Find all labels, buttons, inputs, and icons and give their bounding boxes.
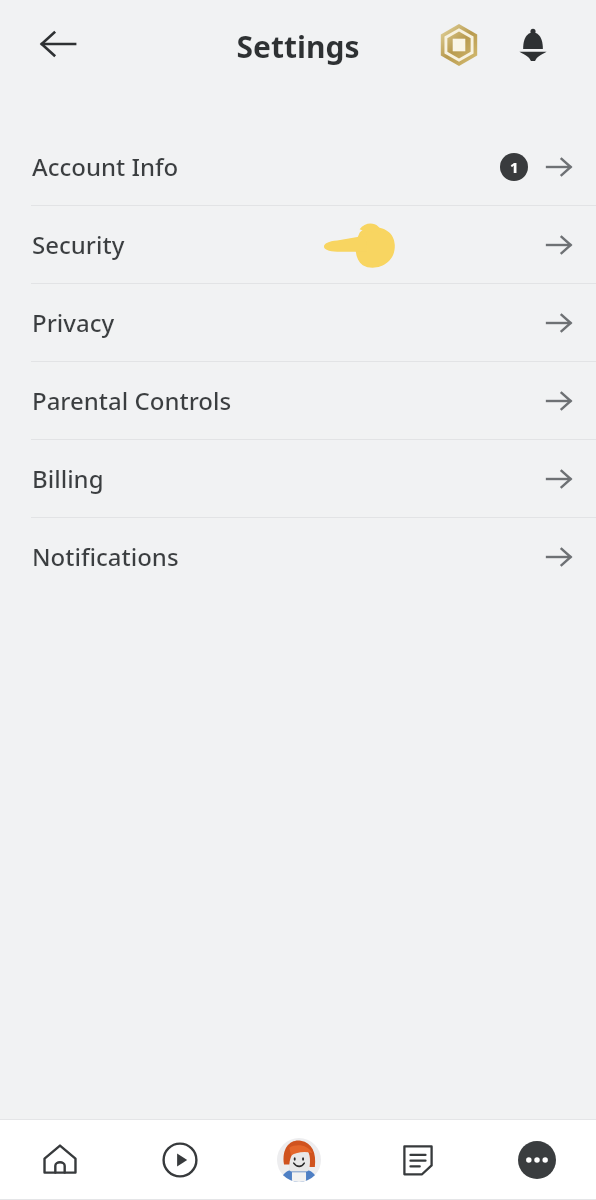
- button[interactable]: Avatar: [239, 1120, 358, 1199]
- staticText: Settings: [0, 26, 596, 67]
- button[interactable]: Robux: [430, 16, 488, 74]
- staticText: Privacy: [32, 306, 115, 339]
- staticText: Account Info: [32, 150, 179, 183]
- button[interactable]: Discover: [120, 1120, 239, 1199]
- button[interactable]: Chat: [358, 1120, 477, 1199]
- staticText: Security: [32, 228, 125, 261]
- button[interactable]: Back: [30, 16, 86, 72]
- button[interactable]: Parental Controls: [0, 362, 596, 439]
- button[interactable]: Security: [0, 206, 596, 283]
- button[interactable]: Notifications: [504, 16, 562, 74]
- staticText: Parental Controls: [32, 384, 232, 417]
- button[interactable]: Billing: [0, 440, 596, 517]
- button[interactable]: Privacy: [0, 284, 596, 361]
- staticText: Notifications: [32, 540, 179, 573]
- staticText: 1: [510, 157, 519, 177]
- button[interactable]: Home: [0, 1120, 120, 1199]
- button[interactable]: More: [477, 1120, 596, 1199]
- button[interactable]: Notifications: [0, 518, 596, 595]
- staticText: Billing: [32, 462, 104, 495]
- button[interactable]: Account Info: [0, 128, 596, 205]
